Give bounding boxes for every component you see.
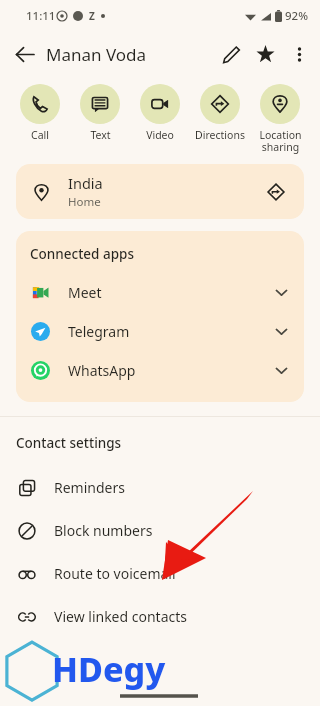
button[interactable]: Telegram	[16, 312, 304, 351]
staticText: Reminders	[54, 478, 125, 497]
button[interactable]: More options	[282, 37, 316, 71]
staticText: Block numbers	[54, 521, 153, 540]
staticText: Route to voicemail	[54, 564, 176, 583]
button[interactable]: WhatsApp	[16, 351, 304, 390]
button[interactable]: Meet	[16, 273, 304, 312]
staticText: View linked contacts	[54, 607, 187, 626]
staticText: Directions	[195, 128, 245, 142]
button[interactable]: Text	[70, 82, 130, 144]
button[interactable]: Reminders	[0, 466, 320, 509]
button[interactable]: India	[16, 164, 304, 219]
staticText: Location sharing	[259, 128, 302, 154]
button[interactable]: Edit contact	[214, 37, 248, 71]
staticText: Contact settings	[16, 434, 122, 452]
staticText: Meet	[68, 283, 273, 302]
staticText: Telegram	[68, 322, 273, 341]
staticText: Manan Voda	[46, 43, 147, 66]
staticText: Text	[90, 128, 111, 142]
staticText: Connected apps	[30, 245, 134, 263]
button[interactable]: Directions	[262, 178, 290, 206]
staticText: Home	[68, 194, 101, 210]
staticText: 92%	[285, 8, 308, 24]
staticText: Video	[146, 128, 174, 142]
button[interactable]: Back	[6, 36, 42, 72]
button[interactable]: Location sharing	[250, 82, 310, 156]
button[interactable]: Route to voicemail	[0, 552, 320, 595]
staticText: India	[68, 173, 103, 193]
staticText: HDegy	[52, 646, 166, 692]
staticText: 11:11	[26, 8, 56, 24]
button[interactable]: Favorite	[248, 37, 282, 71]
button[interactable]: Directions	[190, 82, 250, 144]
staticText: WhatsApp	[68, 361, 273, 380]
staticText: Z	[89, 9, 95, 23]
button[interactable]: Video	[130, 82, 190, 144]
staticText: Call	[31, 128, 49, 142]
button[interactable]: Call	[10, 82, 70, 144]
button[interactable]: Block numbers	[0, 509, 320, 552]
button[interactable]: View linked contacts	[0, 595, 320, 638]
